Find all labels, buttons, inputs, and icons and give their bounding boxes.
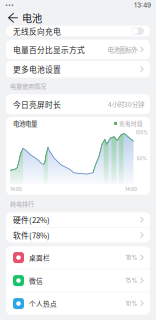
staticText: 10% — [125, 300, 137, 307]
staticText: 100% — [135, 130, 147, 135]
button[interactable]: 今日亮屏时长 — [6, 94, 150, 114]
staticText: 软件(78%) — [13, 230, 50, 241]
staticText: 充电时段 — [119, 119, 143, 127]
staticText: 电池图标外 — [107, 45, 137, 54]
staticText: 14:00 — [125, 187, 137, 192]
staticText: 电量百分比显示方式 — [13, 44, 85, 55]
staticText: 微信 — [29, 276, 43, 285]
staticText: 耗电排行 — [10, 199, 34, 208]
staticText: 无线反向充电 — [13, 25, 61, 37]
button[interactable]: 更多电池设置 — [6, 61, 150, 77]
staticText: 桌面栏 — [29, 253, 50, 262]
button[interactable]: 无线反向充电 — [6, 26, 150, 37]
staticText: 4小时30分钟 — [108, 100, 144, 109]
staticText: 13:49 — [134, 1, 151, 9]
button[interactable]: 桌面栏 — [6, 246, 150, 269]
button[interactable]: 软件(78%) — [6, 228, 150, 243]
staticText: 更多电池设置 — [13, 64, 61, 75]
staticText: 电量使用情况 — [10, 81, 46, 90]
button[interactable]: 电量百分比显示方式 — [6, 40, 150, 59]
staticText: 今日亮屏时长 — [13, 99, 61, 110]
staticText: 电池电量 — [13, 119, 37, 128]
staticText: ••• — [5, 2, 14, 8]
staticText: 15% — [125, 277, 137, 284]
button[interactable]: 硬件(22%) — [6, 212, 150, 227]
staticText: 硬件(22%) — [13, 214, 50, 225]
staticText: 14:00 — [10, 187, 22, 192]
staticText: 电池 — [22, 10, 42, 25]
button[interactable]: 返回 — [3, 10, 22, 25]
staticText: 18% — [125, 254, 137, 261]
staticText: 个人热点 — [29, 299, 57, 308]
button[interactable]: 微信 — [6, 269, 150, 292]
button[interactable]: 个人热点 — [6, 292, 150, 315]
staticText: 50% — [136, 156, 146, 161]
